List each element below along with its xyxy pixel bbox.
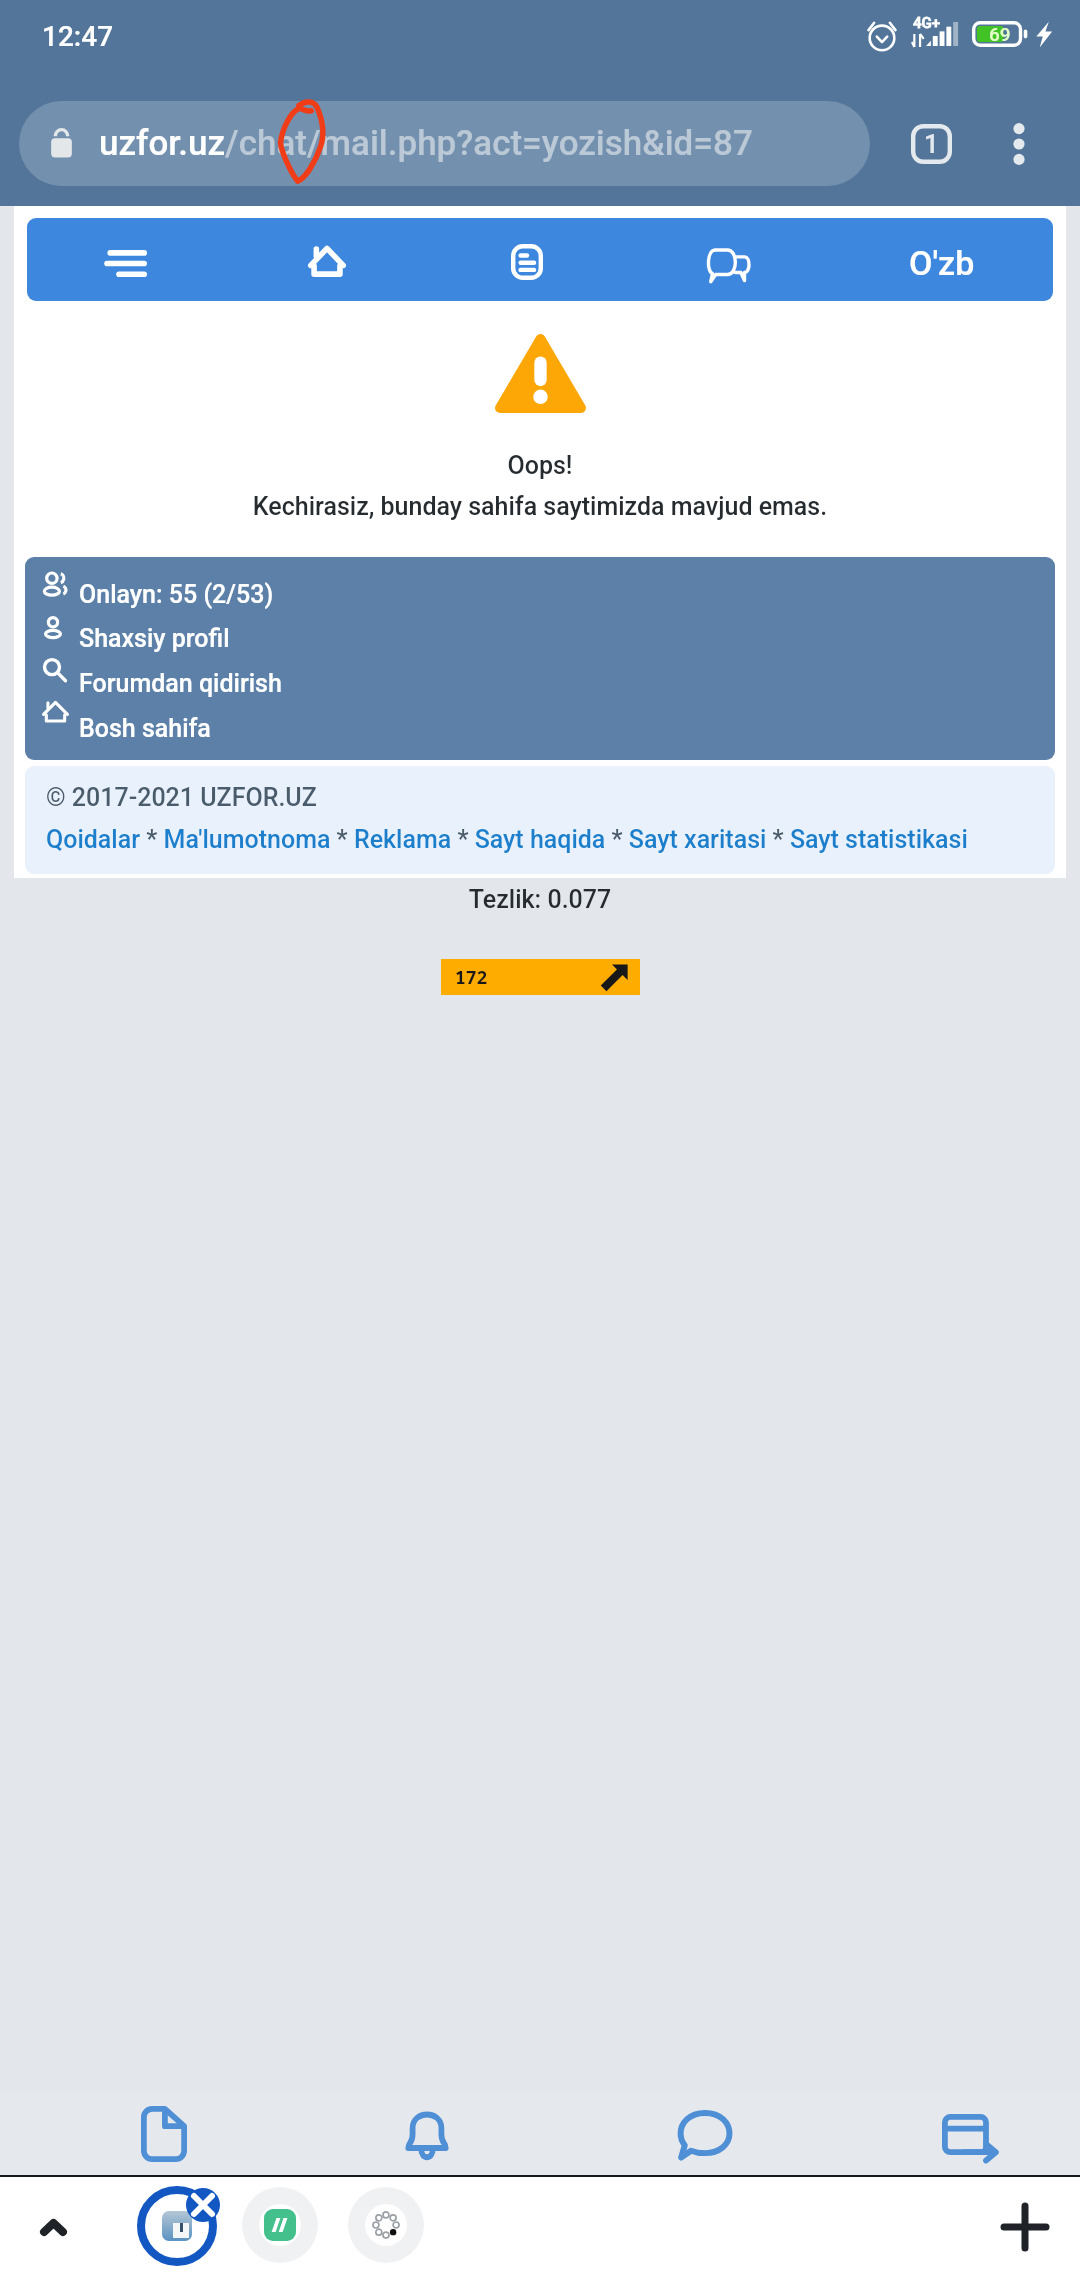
button[interactable]: Tab 2 [242,2187,318,2263]
button[interactable]: Notifications [343,2091,511,2175]
staticText: Tezlik: 0.077 [0,885,1080,914]
button[interactable]: O'zb [855,221,1029,301]
staticText: 1 [924,129,939,159]
staticText: uzfor.uz/chat/mail.php?act=yozish&id=87 [99,123,753,164]
button[interactable]: Shaxsiy profil [25,610,1055,652]
staticText: Forumdan qidirish [79,669,282,698]
staticText: Onlayn: 55 (2/53) [79,580,274,609]
button[interactable]: Tab 3 [348,2187,424,2263]
staticText: 12:47 [42,20,114,53]
button[interactable]: Expand toolbar [20,2194,86,2260]
button[interactable]: Bosh sahifa [25,700,1055,742]
staticText: © 2017-2021 UZFOR.UZ [46,783,317,812]
staticText: 172 [455,965,488,990]
staticText: 4G+ [913,14,941,32]
button[interactable]: Forumdan qidirish [25,655,1055,697]
button[interactable]: Posts [471,218,583,301]
button[interactable]: Onlayn: 55 (2/53) [25,566,1055,608]
button[interactable]: LiveInternet counter [441,959,640,995]
button[interactable]: Chat [666,218,791,301]
button[interactable]: Current tab [137,2186,217,2266]
staticText: Bosh sahifa [79,714,211,743]
staticText: Kechirasiz, bunday sahifa saytimizda mav… [14,492,1066,521]
staticText: 69 [989,23,1011,45]
button[interactable]: Log out [882,2091,1057,2175]
staticText: O'zb [909,243,975,283]
button[interactable]: Messages [618,2091,790,2175]
button[interactable]: Close tab [186,2188,220,2222]
button[interactable]: Home [268,218,386,301]
button[interactable]: New tab [992,2194,1058,2260]
staticText: Qoidalar * Ma'lumotnoma * Reklama * Sayt… [46,825,968,854]
button[interactable]: uzfor.uz/chat/mail.php?act=yozish&id=87 [19,101,870,186]
button[interactable]: Menu [67,218,187,301]
staticText: Shaxsiy profil [79,624,230,653]
staticText: Oops! [14,451,1066,480]
button[interactable]: Tabs [890,104,970,184]
button[interactable]: More options [999,104,1039,184]
button[interactable]: Posts [81,2091,247,2175]
